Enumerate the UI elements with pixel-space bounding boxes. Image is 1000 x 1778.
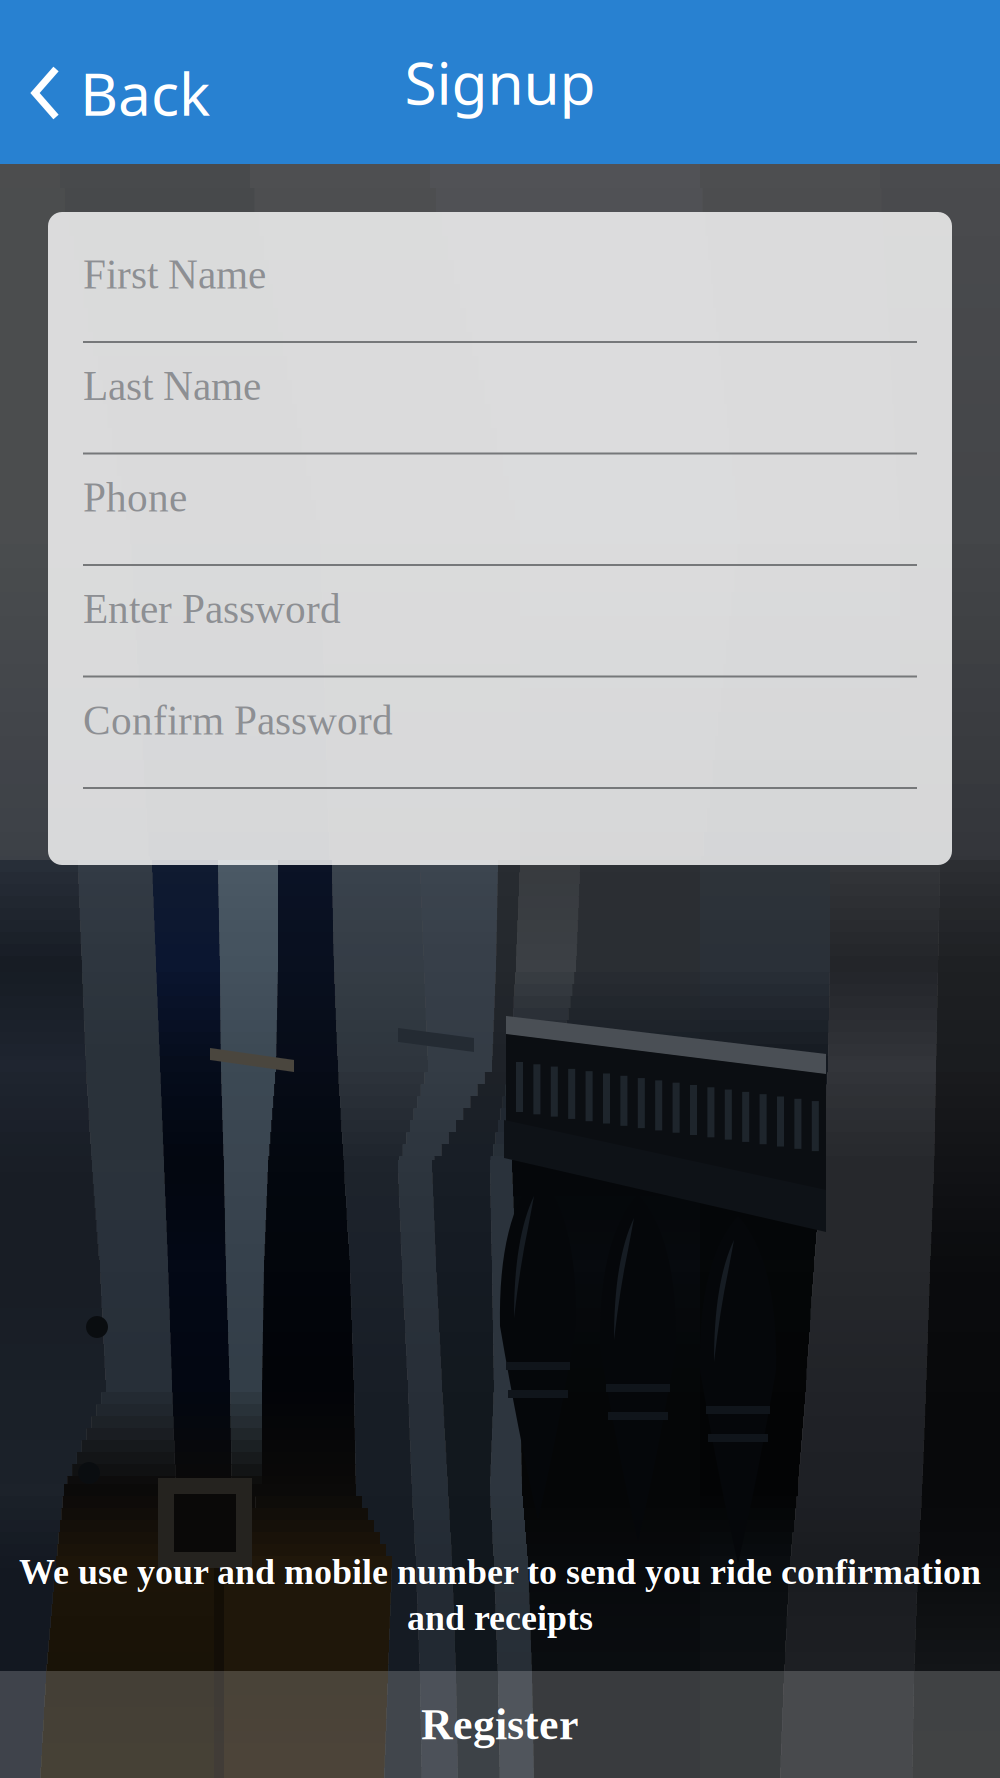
staticText: Last Name bbox=[83, 363, 261, 409]
staticText: and receipts bbox=[407, 1598, 593, 1638]
staticText: Register bbox=[421, 1700, 579, 1749]
staticText: Back bbox=[80, 54, 210, 132]
staticText: We use your and mobile number to send yo… bbox=[19, 1552, 981, 1592]
staticText: Signup bbox=[404, 43, 595, 121]
staticText: Enter Password bbox=[83, 586, 341, 632]
staticText: Confirm Password bbox=[83, 698, 393, 743]
button[interactable]: Register bbox=[0, 1671, 1000, 1778]
staticText: Phone bbox=[83, 475, 187, 520]
button[interactable]: Back bbox=[0, 38, 250, 148]
staticText: First Name bbox=[83, 252, 266, 297]
